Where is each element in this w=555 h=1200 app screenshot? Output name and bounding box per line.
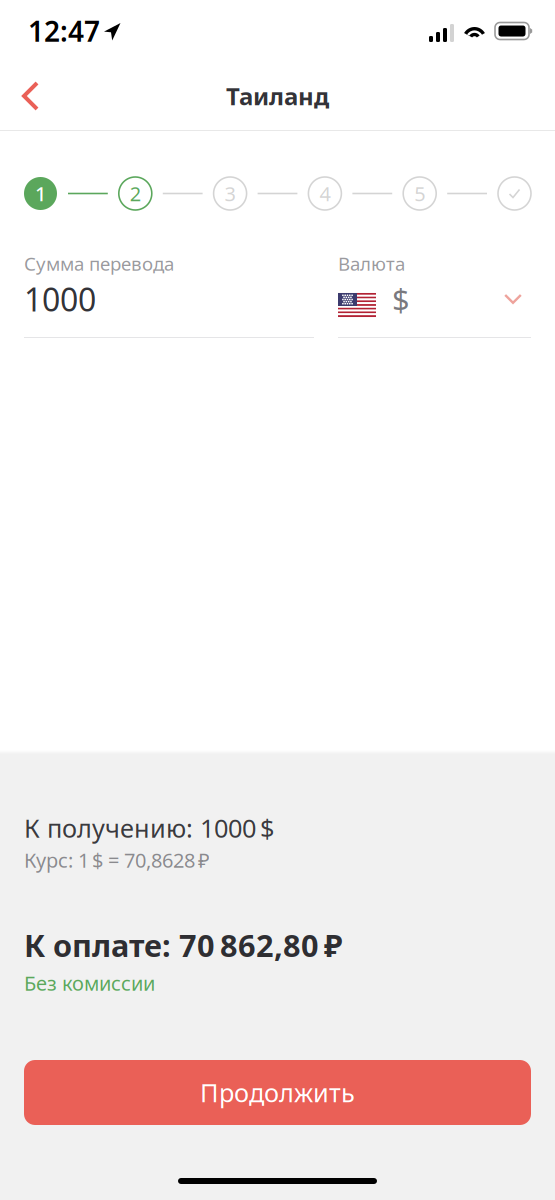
staticText: К оплате: 70 862,80 ₽ [24,925,342,965]
staticText: Продолжить [200,1076,355,1109]
staticText: Сумма перевода [24,251,174,276]
staticText: Курс: 1 $ = 70,8628 ₽ [24,847,210,873]
staticText: Таиланд [226,80,329,112]
staticText: $ [392,279,410,319]
staticText: 5 [414,180,425,207]
button[interactable]: Back [0,68,62,124]
staticText: 12:47 [28,12,100,50]
staticText: 3 [225,180,236,207]
staticText: 1000 [24,278,96,320]
staticText: К получению: 1000 $ [24,811,274,845]
button[interactable]: Валюта [338,250,531,338]
staticText: 2 [130,180,141,207]
staticText: 1 [35,180,46,207]
staticText: Валюта [338,251,405,276]
button[interactable]: Продолжить [24,1060,531,1125]
staticText: Без комиссии [24,970,155,996]
staticText: 4 [319,180,330,207]
